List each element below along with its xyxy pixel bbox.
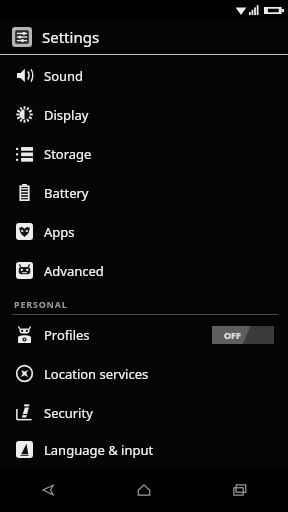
staticText: Storage [44,145,92,163]
staticText: PERSONAL [14,298,68,310]
button[interactable]: Storage [0,134,288,173]
staticText: Advanced [44,262,104,280]
button[interactable]: Back [0,467,96,512]
button[interactable]: Recent apps [192,467,288,512]
staticText: Language & input [44,441,154,459]
staticText: OFF [224,329,242,341]
button[interactable]: OFF [212,326,274,344]
staticText: Display [44,106,89,124]
staticText: Profiles [44,326,90,344]
button[interactable]: Profiles [0,315,288,354]
staticText: Settings [42,27,100,47]
button[interactable]: Security [0,393,288,432]
button[interactable]: Location services [0,354,288,393]
staticText: Apps [44,223,75,241]
staticText: Location services [44,365,149,383]
button[interactable]: Display [0,95,288,134]
staticText: Battery [44,184,89,202]
button[interactable]: Apps [0,212,288,251]
button[interactable]: Home [96,467,192,512]
staticText: Security [44,404,93,422]
button[interactable]: Advanced [0,251,288,290]
button[interactable]: Settings [0,20,288,54]
button[interactable]: Sound [0,56,288,95]
button[interactable]: Battery [0,173,288,212]
staticText: Sound [44,67,84,85]
button[interactable]: Language & input [0,432,288,467]
